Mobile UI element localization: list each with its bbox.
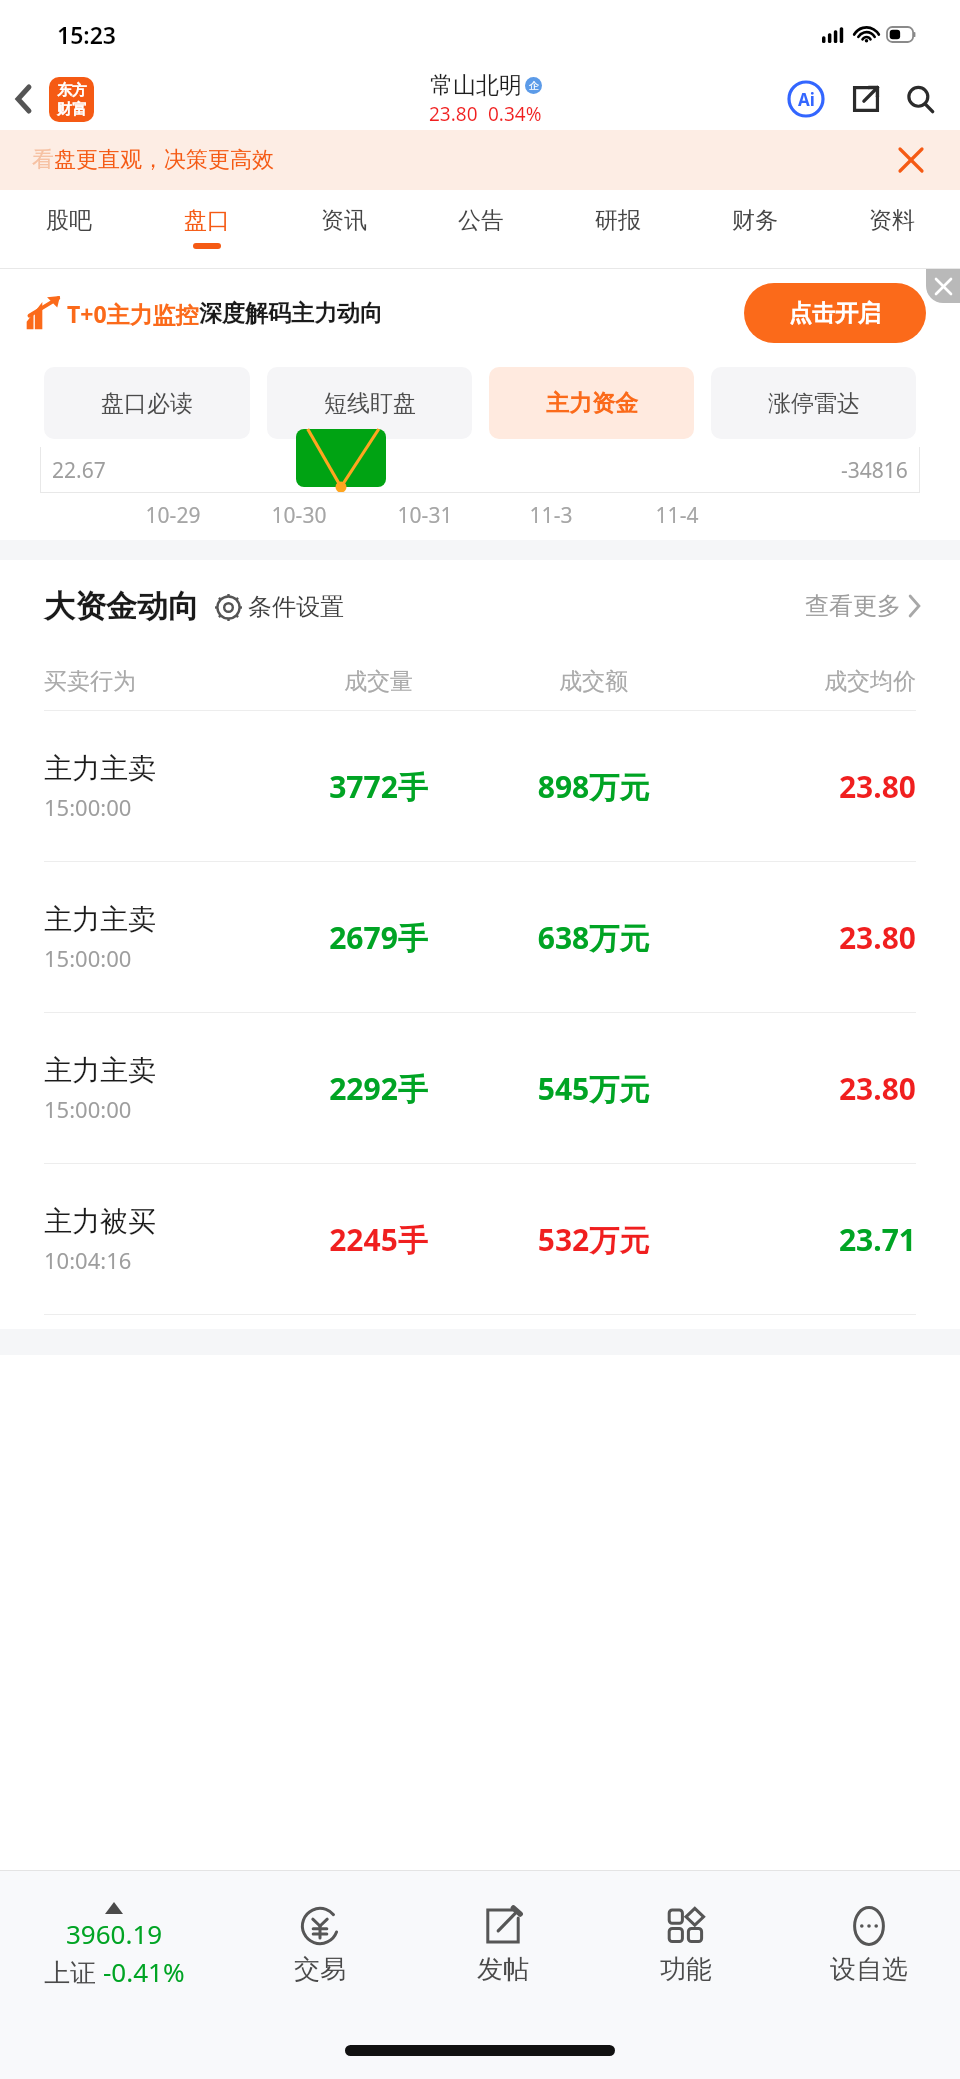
staticText: 15:23: [57, 19, 116, 50]
staticText: 盘口: [184, 206, 230, 235]
staticText: 23.71: [701, 1219, 916, 1260]
button[interactable]: 设自选: [777, 1871, 960, 2021]
staticText: 股吧: [46, 206, 92, 235]
staticText: 深度解码主力动向: [199, 299, 383, 328]
staticText: 15:00:00: [44, 943, 132, 973]
staticText: 功能: [660, 1953, 712, 1986]
button[interactable]: 主力主卖: [0, 1013, 960, 1163]
staticText: 3960.19: [66, 1916, 163, 1951]
staticText: 23.80: [429, 101, 478, 127]
staticText: 23.80: [701, 917, 916, 958]
staticText: 2245手: [271, 1219, 486, 1260]
staticText: 10:04:16: [44, 1245, 132, 1275]
staticText: 成交均价: [701, 667, 916, 696]
staticText: -34816: [841, 456, 908, 485]
staticText: 545万元: [486, 1068, 701, 1109]
staticText: Ai: [798, 88, 815, 111]
staticText: 898万元: [486, 766, 701, 807]
staticText: 2292手: [271, 1068, 486, 1109]
staticText: 常山北明: [430, 71, 522, 100]
button[interactable]: 主力主卖: [0, 711, 960, 861]
staticText: 上证: [44, 1954, 103, 1990]
staticText: T+0主力监控: [67, 298, 199, 329]
button[interactable]: 研报: [549, 190, 686, 269]
staticText: 盘更直观，决策更高效: [54, 146, 274, 174]
staticText: 交易: [294, 1953, 346, 1986]
staticText: 看: [32, 146, 54, 174]
button[interactable]: 3960.19: [0, 1871, 228, 2021]
staticText: 公告: [458, 206, 504, 235]
button[interactable]: 主力被买: [0, 1164, 960, 1314]
button[interactable]: 功能: [594, 1871, 777, 2021]
button[interactable]: Share: [846, 79, 886, 119]
button[interactable]: T+0主力监控: [0, 269, 960, 357]
button[interactable]: Close: [892, 141, 930, 179]
button[interactable]: 财务: [686, 190, 823, 269]
staticText: 11-4: [614, 501, 740, 530]
button[interactable]: Back: [0, 68, 46, 130]
staticText: 短线盯盘: [324, 389, 416, 418]
button[interactable]: 东方财富: [49, 77, 94, 122]
staticText: 点击开启: [789, 299, 881, 328]
staticText: 0.34%: [488, 101, 542, 127]
staticText: 资料: [869, 206, 915, 235]
button[interactable]: 资讯: [275, 190, 412, 269]
staticText: 发帖: [477, 1953, 529, 1986]
staticText: 15:00:00: [44, 792, 132, 822]
button[interactable]: 公告: [412, 190, 549, 269]
staticText: 企: [529, 79, 539, 92]
staticText: 设自选: [830, 1953, 908, 1986]
staticText: 主力主卖: [44, 1053, 156, 1088]
staticText: 大资金动向: [44, 587, 199, 626]
button[interactable]: 盘口: [138, 190, 275, 269]
staticText: 主力主卖: [44, 902, 156, 937]
staticText: 2679手: [271, 917, 486, 958]
staticText: 638万元: [486, 917, 701, 958]
staticText: 11-3: [488, 501, 614, 530]
staticText: 财务: [732, 206, 778, 235]
staticText: 成交量: [271, 667, 486, 696]
staticText: 研报: [595, 206, 641, 235]
button[interactable]: 发帖: [411, 1871, 594, 2021]
staticText: 22.67: [52, 456, 106, 485]
staticText: 条件设置: [248, 592, 344, 622]
button[interactable]: 短线盯盘: [267, 367, 472, 439]
staticText: -0.41%: [103, 1954, 185, 1989]
button[interactable]: 交易: [228, 1871, 411, 2021]
button[interactable]: 条件设置: [215, 592, 344, 622]
button[interactable]: 盘口必读: [44, 367, 250, 439]
button[interactable]: Search: [900, 79, 940, 119]
staticText: 主力被买: [44, 1204, 156, 1239]
button[interactable]: 点击开启: [744, 283, 926, 343]
staticText: 23.80: [701, 766, 916, 807]
button[interactable]: AI assistant: [784, 77, 828, 121]
staticText: 买卖行为: [44, 667, 271, 696]
staticText: 23.80: [701, 1068, 916, 1109]
staticText: 资讯: [321, 206, 367, 235]
staticText: 3772手: [271, 766, 486, 807]
staticText: 成交额: [486, 667, 701, 696]
staticText: 532万元: [486, 1219, 701, 1260]
staticText: 财富: [57, 100, 87, 119]
button[interactable]: 涨停雷达: [711, 367, 916, 439]
staticText: 盘口必读: [101, 389, 193, 418]
staticText: 10-30: [236, 501, 362, 530]
staticText: 主力资金: [546, 389, 638, 418]
button[interactable]: 股吧: [0, 190, 138, 269]
staticText: 涨停雷达: [768, 389, 860, 418]
staticText: 东方: [57, 81, 87, 100]
staticText: 主力主卖: [44, 751, 156, 786]
button[interactable]: 主力资金: [489, 367, 694, 439]
staticText: 15:00:00: [44, 1094, 132, 1124]
button[interactable]: 资料: [823, 190, 960, 269]
staticText: 查看更多: [805, 591, 901, 621]
button[interactable]: Close ad: [926, 269, 960, 303]
button[interactable]: 主力主卖: [0, 862, 960, 1012]
button[interactable]: 看: [0, 130, 960, 190]
staticText: 10-31: [362, 501, 488, 530]
button[interactable]: 查看更多: [805, 591, 920, 621]
staticText: 10-29: [110, 501, 236, 530]
